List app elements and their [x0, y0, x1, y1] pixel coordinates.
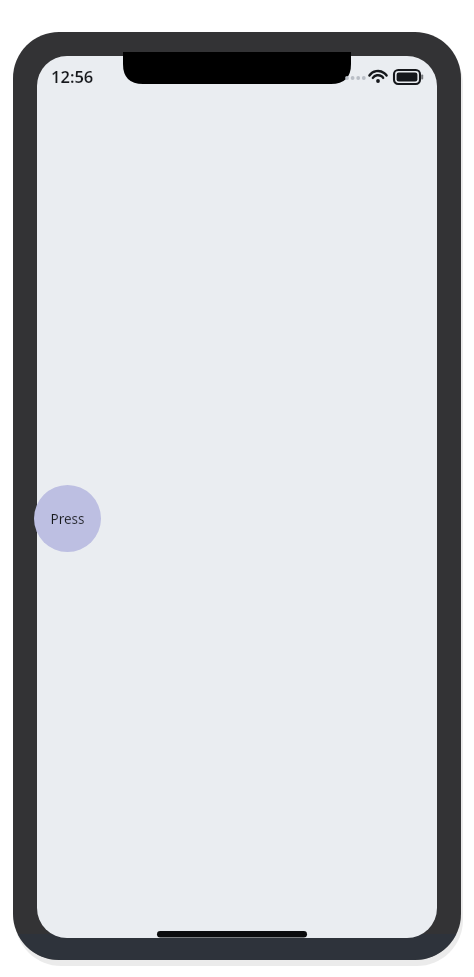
button[interactable]: Press [34, 485, 101, 552]
staticText: Press [50, 510, 85, 528]
staticText: 12:56 [51, 65, 94, 87]
